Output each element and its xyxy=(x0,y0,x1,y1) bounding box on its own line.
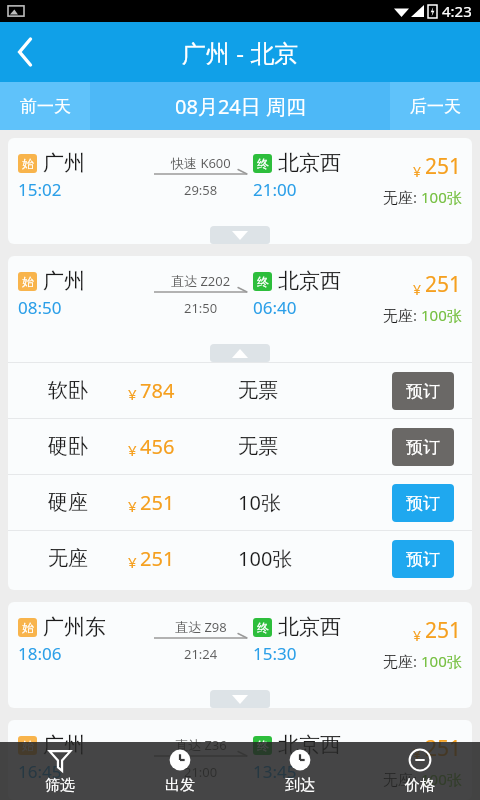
button[interactable]: 到达 xyxy=(240,747,360,795)
staticText: 16:45 xyxy=(18,760,62,783)
staticText: 预订 xyxy=(406,493,440,514)
staticText: ¥ xyxy=(128,552,137,572)
staticText: 出发 xyxy=(165,776,195,795)
staticText: ¥ xyxy=(413,162,425,181)
staticText: ¥ xyxy=(413,626,425,645)
button[interactable]: 前一天 xyxy=(0,82,90,130)
staticText: 100张 xyxy=(238,545,392,572)
button[interactable]: 预订 xyxy=(392,540,454,578)
staticText: 前一天 xyxy=(20,96,71,117)
staticText: 无票 xyxy=(238,434,392,459)
staticText: 软卧 xyxy=(48,378,128,403)
button[interactable]: 硬座 xyxy=(8,475,472,530)
staticText: 100张 xyxy=(421,187,462,207)
staticText: 硬座 xyxy=(48,490,128,515)
staticText: 251 xyxy=(140,489,175,516)
staticText: 456 xyxy=(140,433,175,460)
button[interactable]: 硬卧 xyxy=(8,419,472,474)
staticText: 终 xyxy=(257,738,269,753)
staticText: 08月24日 周四 xyxy=(175,93,306,120)
staticText: 无座 xyxy=(48,546,128,571)
staticText: ¥ xyxy=(128,384,137,404)
staticText: 到达 xyxy=(285,776,315,795)
staticText: 无座: xyxy=(383,769,421,789)
staticText: 广州 xyxy=(43,732,85,758)
staticText: 快速 K600 xyxy=(171,154,231,172)
staticText: 21:24 xyxy=(184,645,218,663)
staticText: 15:02 xyxy=(18,178,62,201)
button[interactable]: 预订 xyxy=(392,484,454,522)
button[interactable]: 始 xyxy=(8,138,472,244)
staticText: 无座: xyxy=(383,651,421,671)
staticText: 广州 xyxy=(43,268,85,294)
button[interactable]: 后一天 xyxy=(390,82,480,130)
staticText: 始 xyxy=(22,620,34,635)
button[interactable]: 预订 xyxy=(392,428,454,466)
staticText: 15:30 xyxy=(253,642,297,665)
staticText: 预订 xyxy=(406,549,440,570)
staticText: 100张 xyxy=(421,305,462,325)
staticText: 筛选 xyxy=(45,776,75,795)
staticText: 13:45 xyxy=(253,760,297,783)
staticText: 10张 xyxy=(238,489,392,516)
staticText: 4:23 xyxy=(442,1,472,21)
staticText: 100张 xyxy=(421,651,462,671)
button[interactable]: 软卧 xyxy=(8,363,472,418)
staticText: 21:00 xyxy=(253,178,297,201)
staticText: 广州东 xyxy=(43,614,106,640)
staticText: 无座: xyxy=(383,305,421,325)
staticText: 终 xyxy=(257,620,269,635)
staticText: 后一天 xyxy=(410,96,461,117)
staticText: 无座: xyxy=(383,187,421,207)
staticText: 251 xyxy=(425,152,462,181)
staticText: ¥ xyxy=(413,280,425,299)
staticText: 硬卧 xyxy=(48,434,128,459)
staticText: ¥ xyxy=(128,440,137,460)
staticText: 北京西 xyxy=(278,614,341,640)
button[interactable]: 无座 xyxy=(8,531,472,586)
staticText: 无票 xyxy=(238,378,392,403)
staticText: 251 xyxy=(425,270,462,299)
button[interactable]: 08月24日 周四 xyxy=(90,82,390,130)
staticText: 北京西 xyxy=(278,150,341,176)
staticText: 21:50 xyxy=(184,299,218,317)
staticText: 18:06 xyxy=(18,642,62,665)
staticText: 251 xyxy=(425,734,462,763)
staticText: 始 xyxy=(22,738,34,753)
staticText: 08:50 xyxy=(18,296,62,319)
staticText: 784 xyxy=(140,377,175,404)
staticText: 终 xyxy=(257,274,269,289)
staticText: ¥ xyxy=(413,744,425,763)
button[interactable]: 预订 xyxy=(392,372,454,410)
staticText: 06:40 xyxy=(253,296,297,319)
staticText: 终 xyxy=(257,156,269,171)
button[interactable]: 筛选 xyxy=(0,747,120,795)
staticText: 预订 xyxy=(406,437,440,458)
staticText: 251 xyxy=(140,545,175,572)
staticText: 21:00 xyxy=(184,763,218,781)
staticText: 广州 - 北京 xyxy=(182,36,299,69)
staticText: 251 xyxy=(425,616,462,645)
button[interactable]: 始 xyxy=(8,256,472,362)
staticText: 价格 xyxy=(405,776,435,795)
button[interactable]: Expand xyxy=(210,226,270,244)
staticText: 始 xyxy=(22,274,34,289)
button[interactable]: Back xyxy=(0,26,52,78)
button[interactable]: Collapse xyxy=(210,344,270,362)
staticText: 预订 xyxy=(406,381,440,402)
staticText: 北京西 xyxy=(278,732,341,758)
staticText: ¥ xyxy=(128,496,137,516)
staticText: 始 xyxy=(22,156,34,171)
button[interactable]: 价格 xyxy=(360,747,480,795)
staticText: 广州 xyxy=(43,150,85,176)
staticText: 北京西 xyxy=(278,268,341,294)
button[interactable]: 始 xyxy=(8,602,472,708)
staticText: 100张 xyxy=(421,769,462,789)
staticText: 29:58 xyxy=(184,181,218,199)
staticText: 直达 Z202 xyxy=(171,272,231,290)
staticText: 直达 Z36 xyxy=(175,736,227,754)
button[interactable]: Expand xyxy=(210,690,270,708)
button[interactable]: 始 xyxy=(8,720,472,800)
button[interactable]: 出发 xyxy=(120,747,240,795)
staticText: 直达 Z98 xyxy=(175,618,227,636)
